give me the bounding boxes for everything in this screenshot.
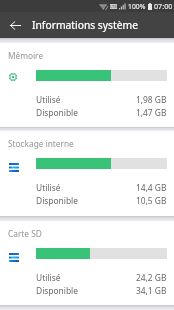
button[interactable]: Stockage interne xyxy=(0,131,174,216)
other: Storage xyxy=(9,163,19,172)
button[interactable]: Back xyxy=(0,12,30,38)
staticText: 07:00 xyxy=(154,1,173,11)
staticText: Disponible xyxy=(36,195,78,206)
staticText: 14,4 GB xyxy=(136,182,167,193)
staticText: Stockage interne xyxy=(8,138,74,149)
staticText: Carte SD xyxy=(8,228,42,239)
staticText: 34,1 GB xyxy=(136,285,167,296)
staticText: Informations système xyxy=(32,18,138,32)
staticText: 100% xyxy=(128,2,146,11)
staticText: Mémoire xyxy=(8,50,44,61)
staticText: 10,5 GB xyxy=(136,195,167,206)
staticText: Utilisé xyxy=(36,272,61,283)
other: Storage xyxy=(9,253,19,262)
staticText: 1,47 GB xyxy=(136,107,167,118)
button[interactable]: Mémoire xyxy=(0,43,174,127)
staticText: Disponible xyxy=(36,285,78,296)
staticText: Utilisé xyxy=(36,94,61,105)
staticText: 24,2 GB xyxy=(136,272,167,283)
staticText: 1,98 GB xyxy=(136,94,167,105)
staticText: Disponible xyxy=(36,107,78,118)
staticText: Utilisé xyxy=(36,182,61,193)
button[interactable]: Carte SD xyxy=(0,221,174,305)
other: Memory xyxy=(9,73,17,81)
staticText: LTE xyxy=(110,4,117,9)
